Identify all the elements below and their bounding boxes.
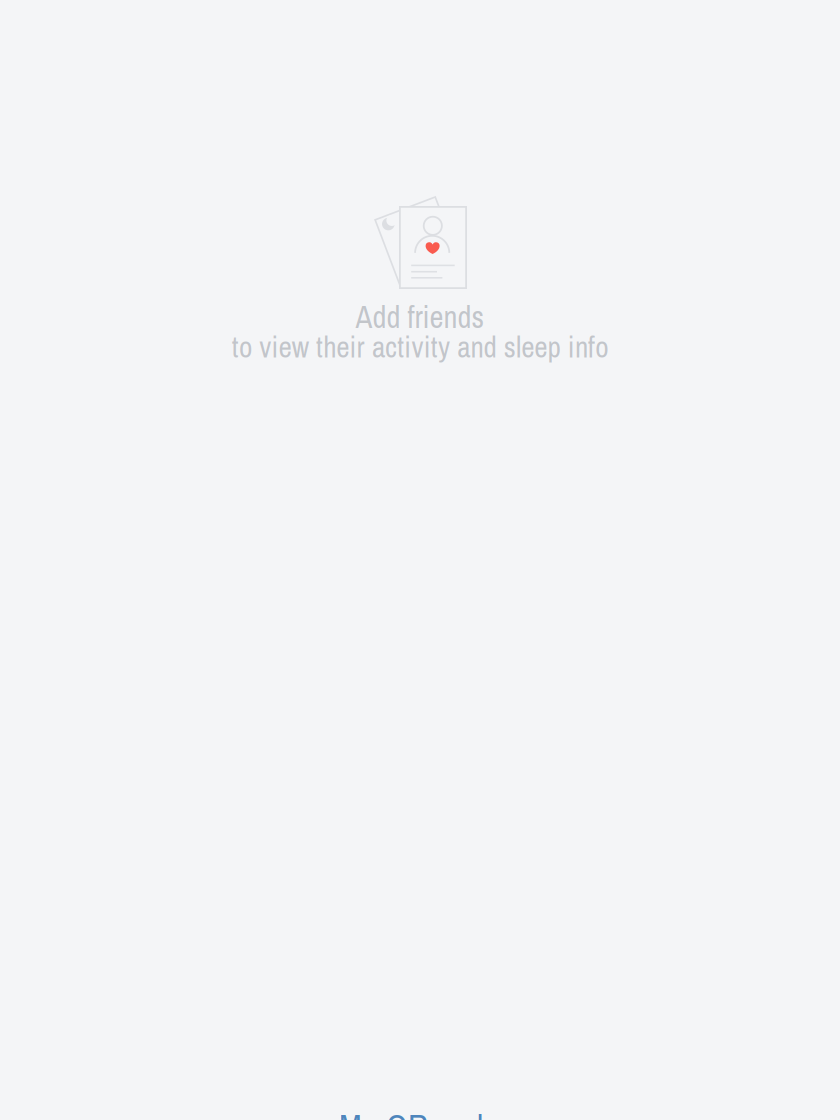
button[interactable]: My QR code xyxy=(339,1104,499,1120)
staticText: to view their activity and sleep info xyxy=(232,327,608,367)
staticText: Add friends xyxy=(355,296,484,338)
staticText: My QR code xyxy=(339,1104,499,1120)
